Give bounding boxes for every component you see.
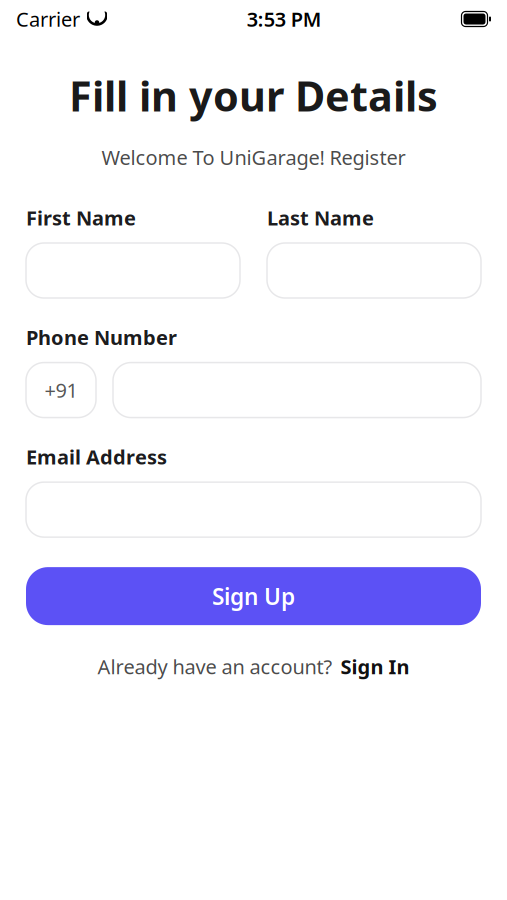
staticText: First Name	[26, 204, 136, 231]
button[interactable]: Country code, plus 91	[26, 363, 96, 418]
staticText: Carrier	[16, 6, 80, 32]
button[interactable]: Sign In	[340, 653, 409, 680]
staticText: Email Address	[26, 444, 167, 470]
staticText: Sign Up	[212, 581, 295, 611]
button[interactable]: Text field	[113, 363, 481, 418]
button[interactable]: Sign Up	[26, 567, 481, 625]
staticText: 3:53 PM	[247, 6, 322, 32]
staticText: +91	[44, 377, 77, 403]
staticText: Sign In	[340, 653, 409, 680]
button[interactable]: First Name	[26, 243, 240, 298]
button[interactable]: Last Name	[267, 243, 481, 298]
button[interactable]: Text field	[26, 482, 481, 537]
staticText: Phone Number	[26, 324, 177, 351]
staticText: Welcome To UniGarage! Register	[101, 144, 405, 170]
staticText: Already have an account?	[97, 653, 332, 680]
staticText: Fill in your Details	[69, 68, 438, 123]
staticText: Last Name	[267, 204, 374, 231]
